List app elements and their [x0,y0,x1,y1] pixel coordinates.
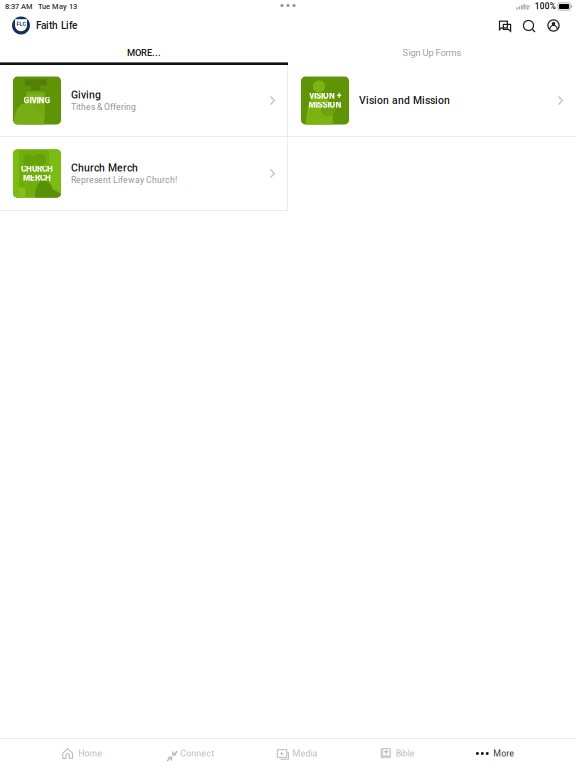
button[interactable]: CHURCH [0,137,288,210]
button[interactable]: Sign Up Forms [288,38,576,65]
staticText: Faith Life [36,20,77,31]
staticText: FLC [16,21,25,27]
staticText: Vision and Mission [359,94,450,107]
button[interactable]: GIVING [0,65,288,136]
button[interactable]: VISION + [288,65,576,136]
staticText: Home [78,748,102,759]
staticText: Connect [180,748,214,759]
button[interactable]: MORE... [0,38,288,65]
staticText: Giving [71,89,101,101]
button[interactable]: Profile [541,12,566,38]
button[interactable]: Search [516,12,541,38]
button[interactable]: Connect [164,738,214,768]
staticText: 100% [535,2,556,11]
button[interactable]: Home [62,738,102,768]
staticText: GIVING [23,96,50,105]
staticText: VISION + [309,91,341,101]
button[interactable]: More [476,738,514,768]
staticText: Represent Lifeway Church! [71,175,177,185]
staticText: Church Merch [71,162,138,174]
button[interactable]: Bible [379,738,415,768]
staticText: Tue May 13 [38,2,77,11]
button[interactable]: Messages [491,12,516,38]
staticText: CHURCH [21,164,53,174]
staticText: More [493,748,514,759]
staticText: Media [292,748,317,759]
staticText: Bible [396,748,415,759]
staticText: MISSION [308,100,341,110]
button[interactable]: Media [276,738,317,768]
staticText: MORE... [127,47,161,58]
staticText: MERCH [23,173,51,183]
staticText: 8:37 AM [5,2,33,11]
button[interactable]: FLC [9,12,80,38]
staticText: Sign Up Forms [402,47,461,58]
staticText: Tithes & Offering [71,102,136,112]
